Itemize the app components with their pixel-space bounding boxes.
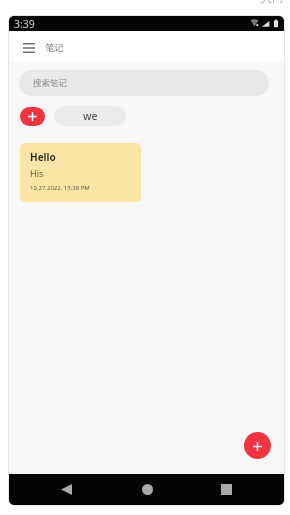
button[interactable]: Home [135, 474, 159, 505]
staticText: Hello [30, 150, 56, 164]
staticText: 笔记 [45, 42, 64, 54]
staticText: we [83, 109, 98, 123]
button[interactable]: Add tag [20, 107, 45, 126]
staticText: 入门 [261, 0, 283, 5]
staticText: His [30, 167, 44, 179]
button[interactable]: Add note [244, 432, 271, 459]
button[interactable]: we [54, 106, 126, 126]
staticText: 3:39 [14, 17, 35, 31]
staticText: 10.27.2022, 15:38 PM [30, 184, 90, 192]
button[interactable]: Recents [214, 474, 238, 505]
staticText: 搜索笔记 [33, 78, 67, 89]
button[interactable]: Hello [20, 143, 141, 202]
button[interactable]: Menu [18, 37, 40, 59]
button[interactable]: Back [54, 474, 78, 505]
button[interactable]: 搜索笔记 [19, 70, 269, 96]
